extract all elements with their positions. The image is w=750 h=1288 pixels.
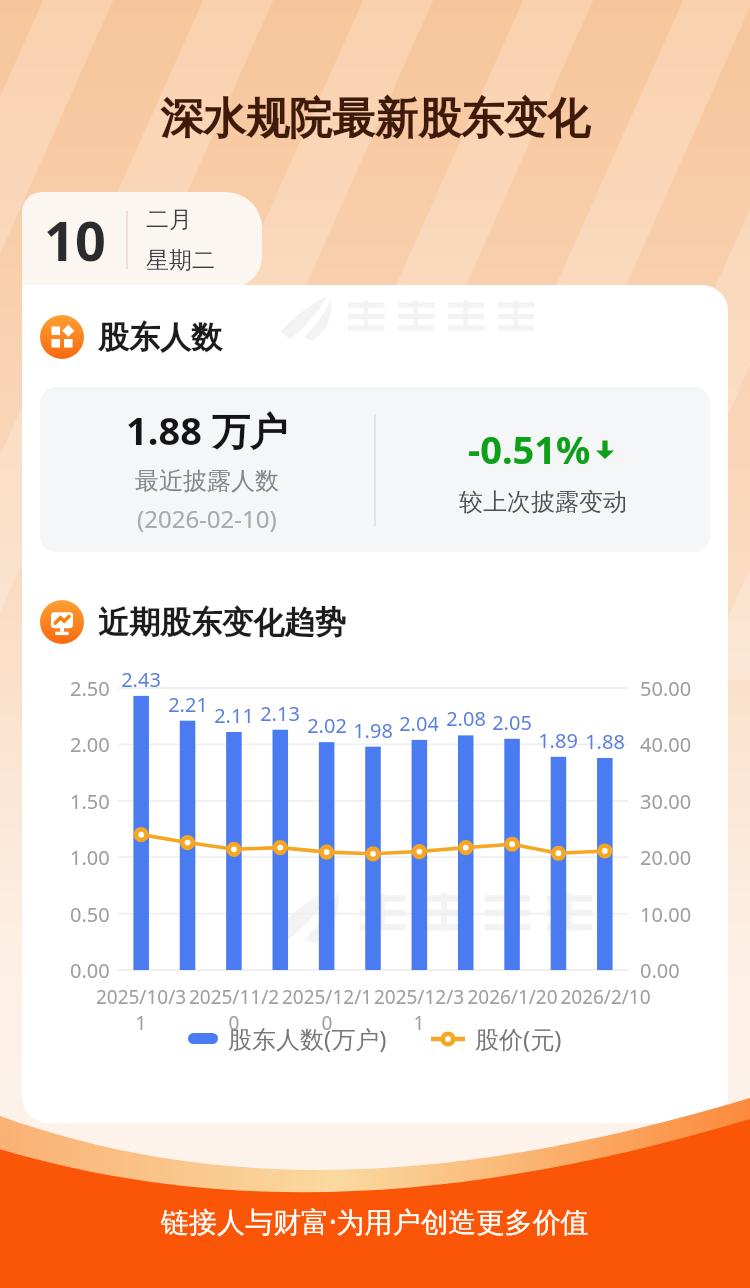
staticText: 股东人数 (98, 318, 222, 357)
button[interactable]: 股东人数 (40, 315, 728, 359)
staticText: 2025/12/10 (279, 984, 375, 1036)
staticText: 2.00 (70, 731, 110, 758)
staticText: 10.00 (640, 901, 692, 928)
staticText: 二月 (146, 205, 192, 234)
button[interactable]: 10 (22, 192, 262, 287)
staticText: 1.88 (585, 728, 625, 755)
staticText: 40.00 (640, 731, 692, 758)
staticText: 2025/11/20 (186, 984, 282, 1036)
staticText: 1.89 (538, 727, 578, 754)
button[interactable]: 趋势图 (40, 600, 728, 644)
staticText: 30.00 (640, 788, 692, 815)
staticText: 深水规院最新股东变化 (160, 92, 590, 146)
staticText: 2.13 (260, 700, 300, 727)
staticText: 2.21 (168, 691, 208, 718)
staticText: 0.00 (640, 957, 680, 984)
staticText: 0.50 (70, 901, 110, 928)
staticText: 2025/12/31 (371, 984, 467, 1036)
staticText: 2.08 (446, 705, 486, 732)
staticText: 较上次披露变动 (459, 487, 627, 517)
staticText: 2.43 (121, 666, 161, 693)
button[interactable]: 股东人数(万户) (188, 1022, 387, 1055)
staticText: 2025/10/31 (93, 984, 189, 1036)
other: 股东人数 (40, 315, 84, 359)
staticText: 2.05 (492, 709, 532, 736)
staticText: 最近披露人数 (135, 466, 279, 496)
staticText: 2026/2/10 (560, 984, 651, 1010)
other: 趋势图 (40, 600, 84, 644)
staticText: 1.50 (70, 788, 110, 815)
staticText: 20.00 (640, 844, 692, 871)
staticText: 星期二 (146, 246, 215, 275)
staticText: 1.98 (353, 717, 393, 744)
staticText: 50.00 (640, 675, 692, 702)
staticText: 1.88 万户 (126, 404, 288, 456)
staticText: 10 (44, 203, 106, 277)
staticText: 股东人数(万户) (228, 1022, 387, 1055)
staticText: 2.02 (307, 712, 347, 739)
staticText: 股价(元) (475, 1022, 562, 1055)
staticText: (2026-02-10) (137, 502, 277, 535)
staticText: 近期股东变化趋势 (98, 603, 346, 642)
staticText: 2.50 (70, 675, 110, 702)
staticText: 2026/1/20 (467, 984, 558, 1010)
staticText: 0.00 (70, 957, 110, 984)
button[interactable]: 1.88 万户 (40, 387, 710, 552)
staticText: 1.00 (70, 844, 110, 871)
button[interactable]: 股价(元) (431, 1022, 562, 1055)
staticText: 2.04 (399, 710, 439, 737)
staticText: 链接人与财富·为用户创造更多价值 (161, 1202, 589, 1240)
staticText: -0.51% (468, 423, 591, 475)
staticText: 2.11 (214, 702, 254, 729)
